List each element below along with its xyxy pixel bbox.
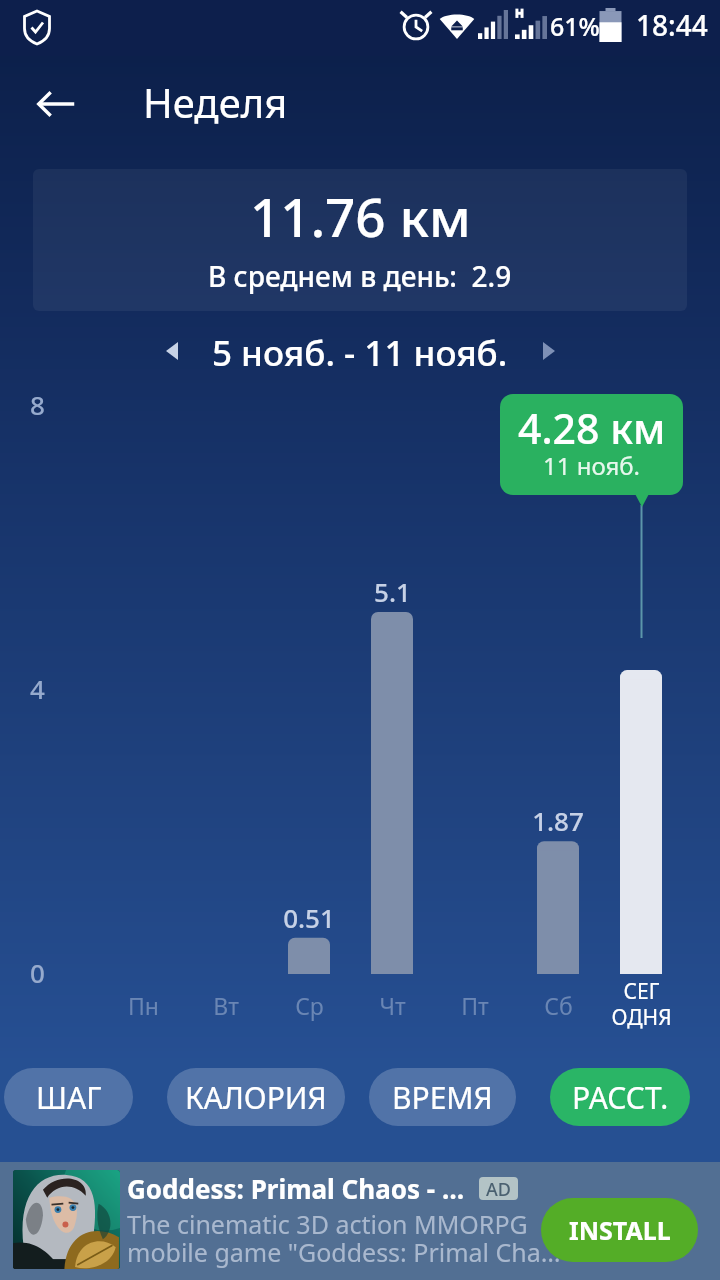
staticText: 11.76 км	[250, 180, 471, 252]
staticText: Пт	[461, 990, 489, 1021]
button[interactable]: ШАГ	[4, 1068, 133, 1126]
button[interactable]: 11.76 км	[33, 169, 687, 311]
staticText: 18:44	[636, 6, 708, 44]
staticText: INSTALL	[569, 1213, 671, 1247]
staticText: Вт	[213, 990, 239, 1021]
staticText: 8	[30, 387, 45, 422]
staticText: 11 нояб.	[543, 449, 641, 482]
button[interactable]: Previous week	[150, 329, 194, 373]
button[interactable]: Back	[27, 75, 85, 133]
staticText: Неделя	[143, 75, 288, 129]
staticText: 4.28 км	[518, 400, 666, 456]
staticText: 1.87	[532, 803, 584, 838]
staticText: КАЛОРИЯ	[185, 1077, 327, 1118]
button[interactable]: Next week	[527, 329, 571, 373]
staticText: Сб	[544, 990, 573, 1021]
staticText: ВРЕМЯ	[392, 1077, 493, 1118]
staticText: The cinematic 3D action MMORPG mobile ga…	[127, 1207, 561, 1269]
staticText: РАССТ.	[572, 1077, 669, 1118]
staticText: ШАГ	[36, 1077, 102, 1118]
staticText: 5.1	[374, 574, 411, 609]
button[interactable]: INSTALL	[541, 1198, 698, 1262]
staticText: 0	[30, 955, 45, 990]
staticText: Чт	[379, 990, 406, 1021]
staticText: 61%	[550, 9, 600, 43]
button[interactable]: Advertisement: Goddess Primal Chaos	[0, 1162, 720, 1280]
staticText: Goddess: Primal Chaos - …	[127, 1171, 465, 1206]
staticText: 4	[30, 671, 45, 706]
button[interactable]: КАЛОРИЯ	[167, 1068, 345, 1126]
staticText: В среднем в день: 2.9	[208, 257, 512, 295]
staticText: Ср	[295, 990, 324, 1021]
staticText: 0.51	[283, 900, 335, 935]
staticText: 5 нояб. - 11 нояб.	[212, 329, 508, 377]
button[interactable]: ВРЕМЯ	[369, 1068, 516, 1126]
staticText: AD	[486, 1177, 511, 1200]
staticText: Пн	[128, 990, 159, 1021]
staticText: СЕГ ОДНЯ	[611, 977, 672, 1031]
button[interactable]: 4.28 км	[500, 394, 683, 495]
button[interactable]: РАССТ.	[550, 1068, 690, 1126]
